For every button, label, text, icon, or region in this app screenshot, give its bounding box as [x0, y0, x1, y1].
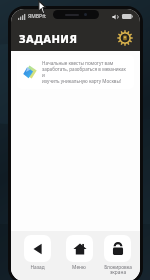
- button[interactable]: Меню: [58, 235, 100, 271]
- staticText: ЗАДАНИЯ: [19, 31, 78, 46]
- staticText: Начальные квесты помогут вам: [42, 60, 114, 66]
- button[interactable]: Начальные квесты помогут вам: [17, 55, 134, 89]
- staticText: Блокировка экрана: [104, 264, 132, 276]
- button[interactable]: Назад: [16, 235, 58, 271]
- button[interactable]: Блокировка экрана: [100, 235, 135, 276]
- staticText: Меню: [72, 264, 86, 271]
- staticText: Назад: [30, 264, 45, 271]
- staticText: ЯМВРft: [28, 13, 46, 20]
- button[interactable]: Награды: [117, 30, 133, 46]
- staticText: заработать, разобраться в механиках и: [42, 66, 128, 78]
- staticText: изучить уникальную карту Москвы!: [42, 78, 122, 84]
